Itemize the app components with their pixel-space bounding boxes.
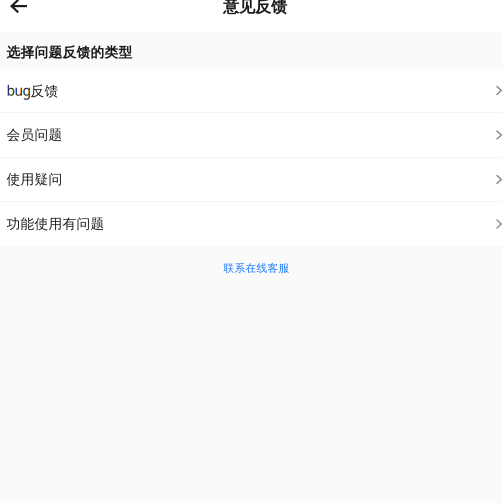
staticText: 会员问题 [7,126,63,144]
staticText: 使用疑问 [7,171,63,188]
button[interactable]: Back [0,0,44,32]
staticText: 选择问题反馈的类型 [7,44,133,61]
button[interactable]: 会员问题 [0,113,503,158]
staticText: 功能使用有问题 [7,215,105,233]
button[interactable]: 使用疑问 [0,158,503,202]
staticText: bug反馈 [7,81,59,100]
button[interactable]: 联系在线客服 [217,255,295,281]
staticText: 联系在线客服 [223,261,289,275]
button[interactable]: bug反馈 [0,69,503,113]
staticText: 意见反馈 [223,0,287,17]
button[interactable]: 功能使用有问题 [0,202,503,247]
